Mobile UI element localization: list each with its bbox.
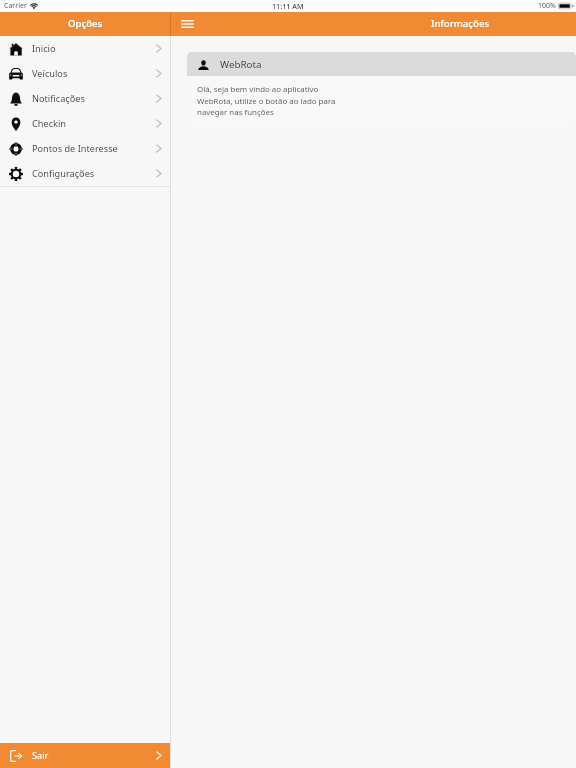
staticText: Configurações	[32, 167, 95, 180]
button[interactable]: Configurações	[0, 161, 170, 186]
staticText: Inicio	[32, 42, 56, 55]
staticText: 11:11 AM	[272, 1, 304, 11]
staticText: WebRota	[220, 58, 262, 71]
staticText: Informações	[431, 17, 490, 30]
button[interactable]: Menu	[177, 14, 198, 35]
staticText: Sair	[32, 749, 49, 762]
staticText: Carrier	[4, 1, 27, 11]
button[interactable]: Pontos de Interesse	[0, 136, 170, 161]
button[interactable]: Inicio	[0, 36, 170, 61]
button[interactable]: Veículos	[0, 61, 170, 86]
staticText: Opções	[68, 17, 103, 30]
staticText: Veículos	[32, 67, 68, 80]
staticText: Olá, seja bem vindo ao aplicativo WebRot…	[197, 84, 336, 117]
button[interactable]: Checkin	[0, 111, 170, 136]
staticText: Pontos de Interesse	[32, 142, 118, 155]
staticText: 100%	[538, 1, 556, 11]
staticText: Checkin	[32, 117, 67, 130]
button[interactable]: Sair	[0, 743, 170, 768]
staticText: Notificações	[32, 92, 85, 105]
button[interactable]: Notificações	[0, 86, 170, 111]
